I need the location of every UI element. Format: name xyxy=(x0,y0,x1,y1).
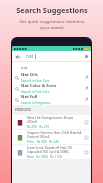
staticText: Search in Hair Care xyxy=(21,79,50,83)
staticText: Nat Oils xyxy=(21,72,38,78)
button[interactable]: Icare.Limit Dandruff Hair Oil Capsules(1… xyxy=(12,145,91,159)
staticText: Organic Harvest Hair Oil & Hairfall Cont… xyxy=(27,130,82,139)
staticText: Rate Rs 1400 Rs 1100 xyxy=(27,155,62,159)
button[interactable]: Add to cart xyxy=(84,135,89,140)
staticText: nat xyxy=(26,53,34,60)
button[interactable]: Add to cart xyxy=(84,120,89,125)
button[interactable]: Nat Color & Even xyxy=(12,83,91,94)
button[interactable]: Back xyxy=(14,53,21,60)
button[interactable]: Clear search xyxy=(83,53,89,59)
staticText: Get quick suggestions related to your se… xyxy=(19,18,85,30)
staticText: PRODUCTS xyxy=(15,108,31,112)
button[interactable]: Organic Harvest Hair Oil & Hairfall Cont… xyxy=(12,130,91,144)
staticText: Search in Hair Care xyxy=(21,90,50,94)
button[interactable]: Nat Full xyxy=(12,94,91,105)
staticText: Search Suggestions xyxy=(16,5,88,15)
staticText: nat xyxy=(21,65,28,70)
staticText: Price Rs 300 Rs 249 xyxy=(27,140,59,144)
staticText: Nat Full xyxy=(21,94,38,100)
button[interactable]: Nat Oils xyxy=(12,72,91,83)
staticText: Icare.Limit Dandruff Hair Oil Capsules(1… xyxy=(27,145,72,154)
staticText: New Life Haingestures Drops (25ml) xyxy=(27,115,84,124)
button[interactable]: Use suggestion xyxy=(84,86,89,91)
button[interactable]: Add to cart xyxy=(84,150,89,155)
staticText: Rs 250 Rs 210 xyxy=(27,125,50,129)
button[interactable]: Use suggestion xyxy=(84,97,89,102)
button[interactable]: New Life Haingestures Drops (25ml) xyxy=(12,115,91,129)
button[interactable]: Use suggestion xyxy=(84,75,89,80)
staticText: Search in Fragrance xyxy=(21,101,51,105)
staticText: Nat Color & Even xyxy=(21,83,57,89)
